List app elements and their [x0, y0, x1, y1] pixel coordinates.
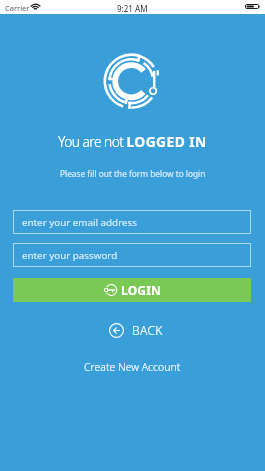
- button[interactable]: enter your password: [13, 243, 251, 267]
- staticText: enter your password: [22, 249, 118, 262]
- button[interactable]: LOGIN: [13, 278, 251, 302]
- staticText: BACK: [132, 322, 163, 338]
- staticText: enter your email address: [22, 216, 137, 229]
- staticText: Create New Account: [84, 360, 181, 374]
- staticText: LOGIN: [121, 282, 162, 298]
- button[interactable]: Back: [101, 319, 171, 341]
- button[interactable]: enter your email address: [13, 210, 251, 234]
- other: Back: [109, 323, 124, 338]
- staticText: Please fill out the form below to login: [60, 168, 206, 179]
- staticText: You are not LOGGED IN: [58, 132, 207, 151]
- staticText: Carrier: [5, 3, 30, 13]
- button[interactable]: Create New Account: [74, 356, 191, 378]
- other: App logo: [100, 49, 164, 113]
- staticText: 9:21 AM: [117, 3, 148, 14]
